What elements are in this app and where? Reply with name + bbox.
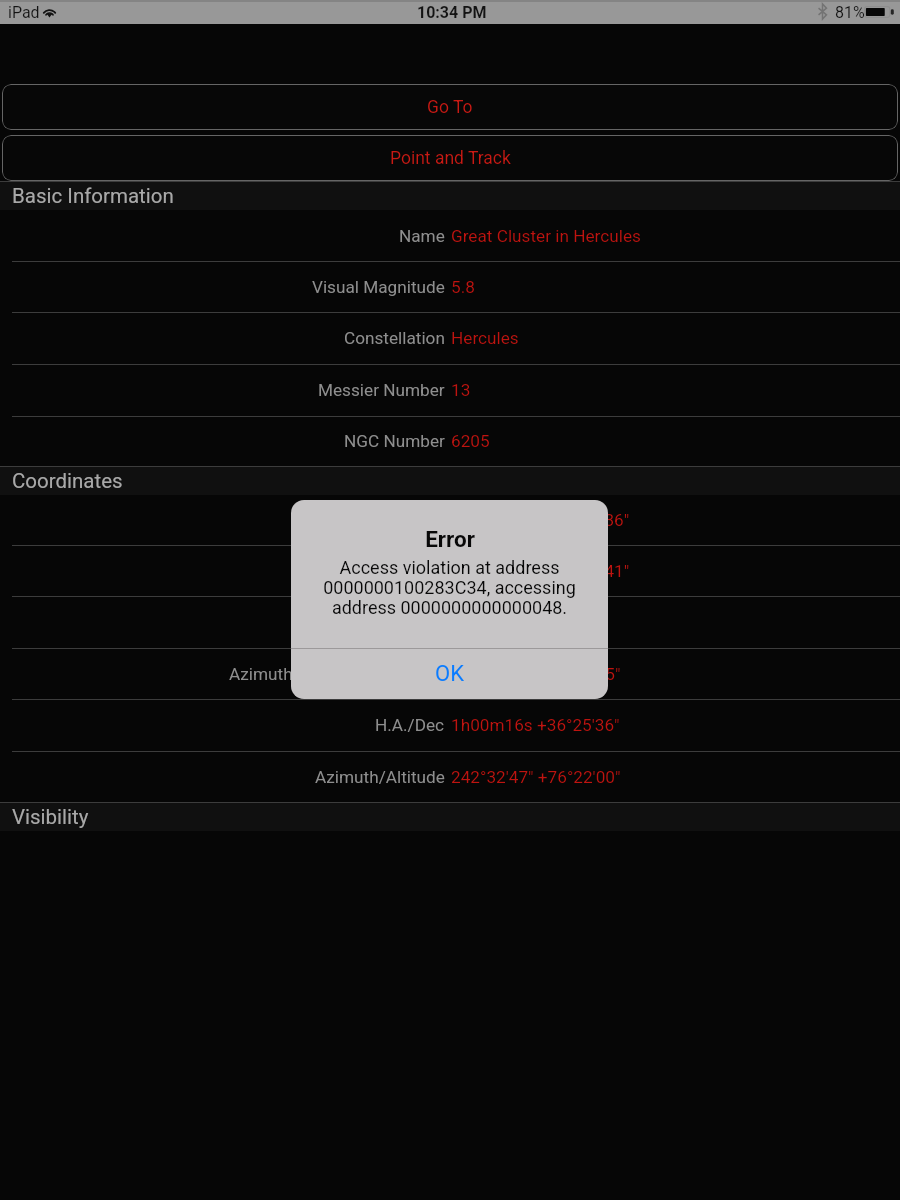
- staticText: Access violation at address 000000010028…: [304, 557, 595, 619]
- staticText: OK: [435, 661, 464, 687]
- staticText: 59°00′47″ +40°54′5″: [451, 612, 602, 632]
- staticText: Azimuth/Altitude (Apparent): [229, 664, 445, 684]
- staticText: Coordinates: [12, 469, 123, 493]
- staticText: 6205: [451, 431, 490, 451]
- staticText: Visual Magnitude: [312, 277, 445, 297]
- staticText: 5.8: [451, 277, 475, 297]
- staticText: Point and Track: [390, 148, 511, 169]
- staticText: Constellation: [344, 328, 445, 348]
- staticText: Azimuth/Altitude: [315, 767, 445, 787]
- staticText: Name: [399, 226, 445, 246]
- button[interactable]: Messier Number: [0, 364, 900, 416]
- button[interactable]: Constellation: [0, 312, 900, 364]
- staticText: 242°32′47″ +76°22′00″: [451, 767, 621, 787]
- staticText: 16h41m41s +36°27′36″: [451, 510, 630, 530]
- staticText: Basic Information: [12, 184, 174, 208]
- button[interactable]: Visual Magnitude: [0, 261, 900, 312]
- button[interactable]: OK: [291, 649, 608, 699]
- button[interactable]: NGC Number: [0, 416, 900, 466]
- staticText: 1h00m16s +36°25′36″: [451, 715, 620, 735]
- staticText: Go To: [427, 97, 473, 118]
- other: Battery 81 percent: [864, 6, 894, 18]
- staticText: Hercules: [451, 328, 519, 348]
- staticText: Great Cluster in Hercules: [451, 226, 641, 246]
- staticText: R.A./Dec: [377, 561, 445, 581]
- button[interactable]: Point and Track: [2, 135, 898, 181]
- other: Wi-Fi: [42, 6, 57, 17]
- staticText: 81%: [835, 3, 865, 22]
- staticText: 242°32′47″ +76°22′15″: [451, 664, 621, 684]
- button[interactable]: Name: [0, 210, 900, 261]
- button[interactable]: Azimuth/Altitude (Apparent): [0, 648, 900, 699]
- staticText: Visibility: [12, 805, 89, 829]
- button[interactable]: H.A./Dec: [0, 699, 900, 751]
- button[interactable]: R.A./Dec: [0, 545, 900, 596]
- staticText: 16h42m27s +36°24′41″: [451, 561, 630, 581]
- button[interactable]: Galactic Lat/Long: [0, 596, 900, 648]
- staticText: NGC Number: [344, 431, 445, 451]
- staticText: Error: [425, 526, 475, 552]
- button[interactable]: Go To: [2, 84, 898, 130]
- button[interactable]: Azimuth/Altitude: [0, 751, 900, 802]
- staticText: 10:34 PM: [417, 3, 487, 22]
- button[interactable]: R.A./Dec (J2000): [0, 495, 900, 545]
- staticText: 13: [451, 380, 471, 400]
- staticText: H.A./Dec: [375, 715, 445, 735]
- staticText: Galactic Lat/Long: [308, 612, 445, 632]
- other: Bluetooth: [817, 4, 828, 19]
- staticText: Messier Number: [318, 380, 445, 400]
- staticText: iPad: [8, 3, 40, 22]
